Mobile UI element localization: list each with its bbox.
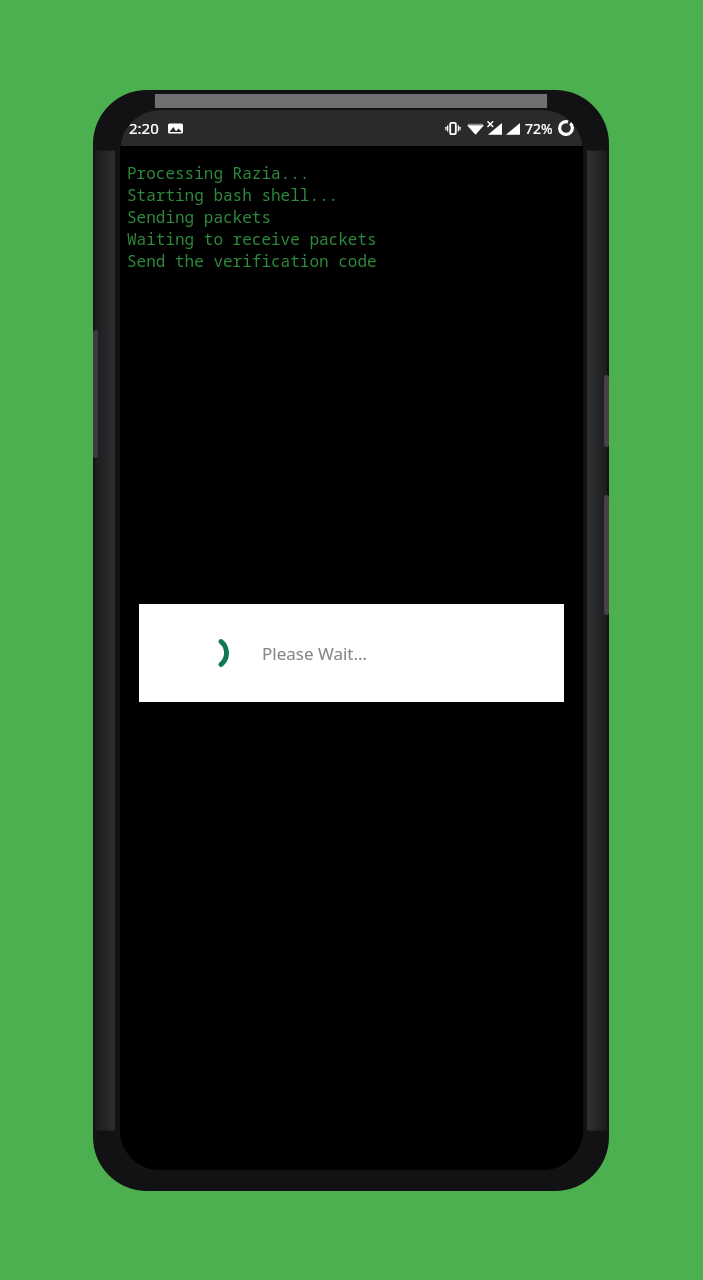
staticText: Starting bash shell...: [127, 184, 339, 206]
staticText: Waiting to receive packets: [127, 228, 377, 250]
other: Loading: [195, 636, 229, 670]
staticText: Processing Razia...: [127, 162, 310, 184]
staticText: Sending packets: [127, 206, 272, 228]
staticText: 72%: [525, 119, 553, 138]
button[interactable]: Loading: [139, 604, 564, 702]
staticText: Send the verification code: [127, 250, 377, 272]
staticText: 2:20: [129, 118, 159, 138]
staticText: Please Wait...: [262, 642, 368, 665]
